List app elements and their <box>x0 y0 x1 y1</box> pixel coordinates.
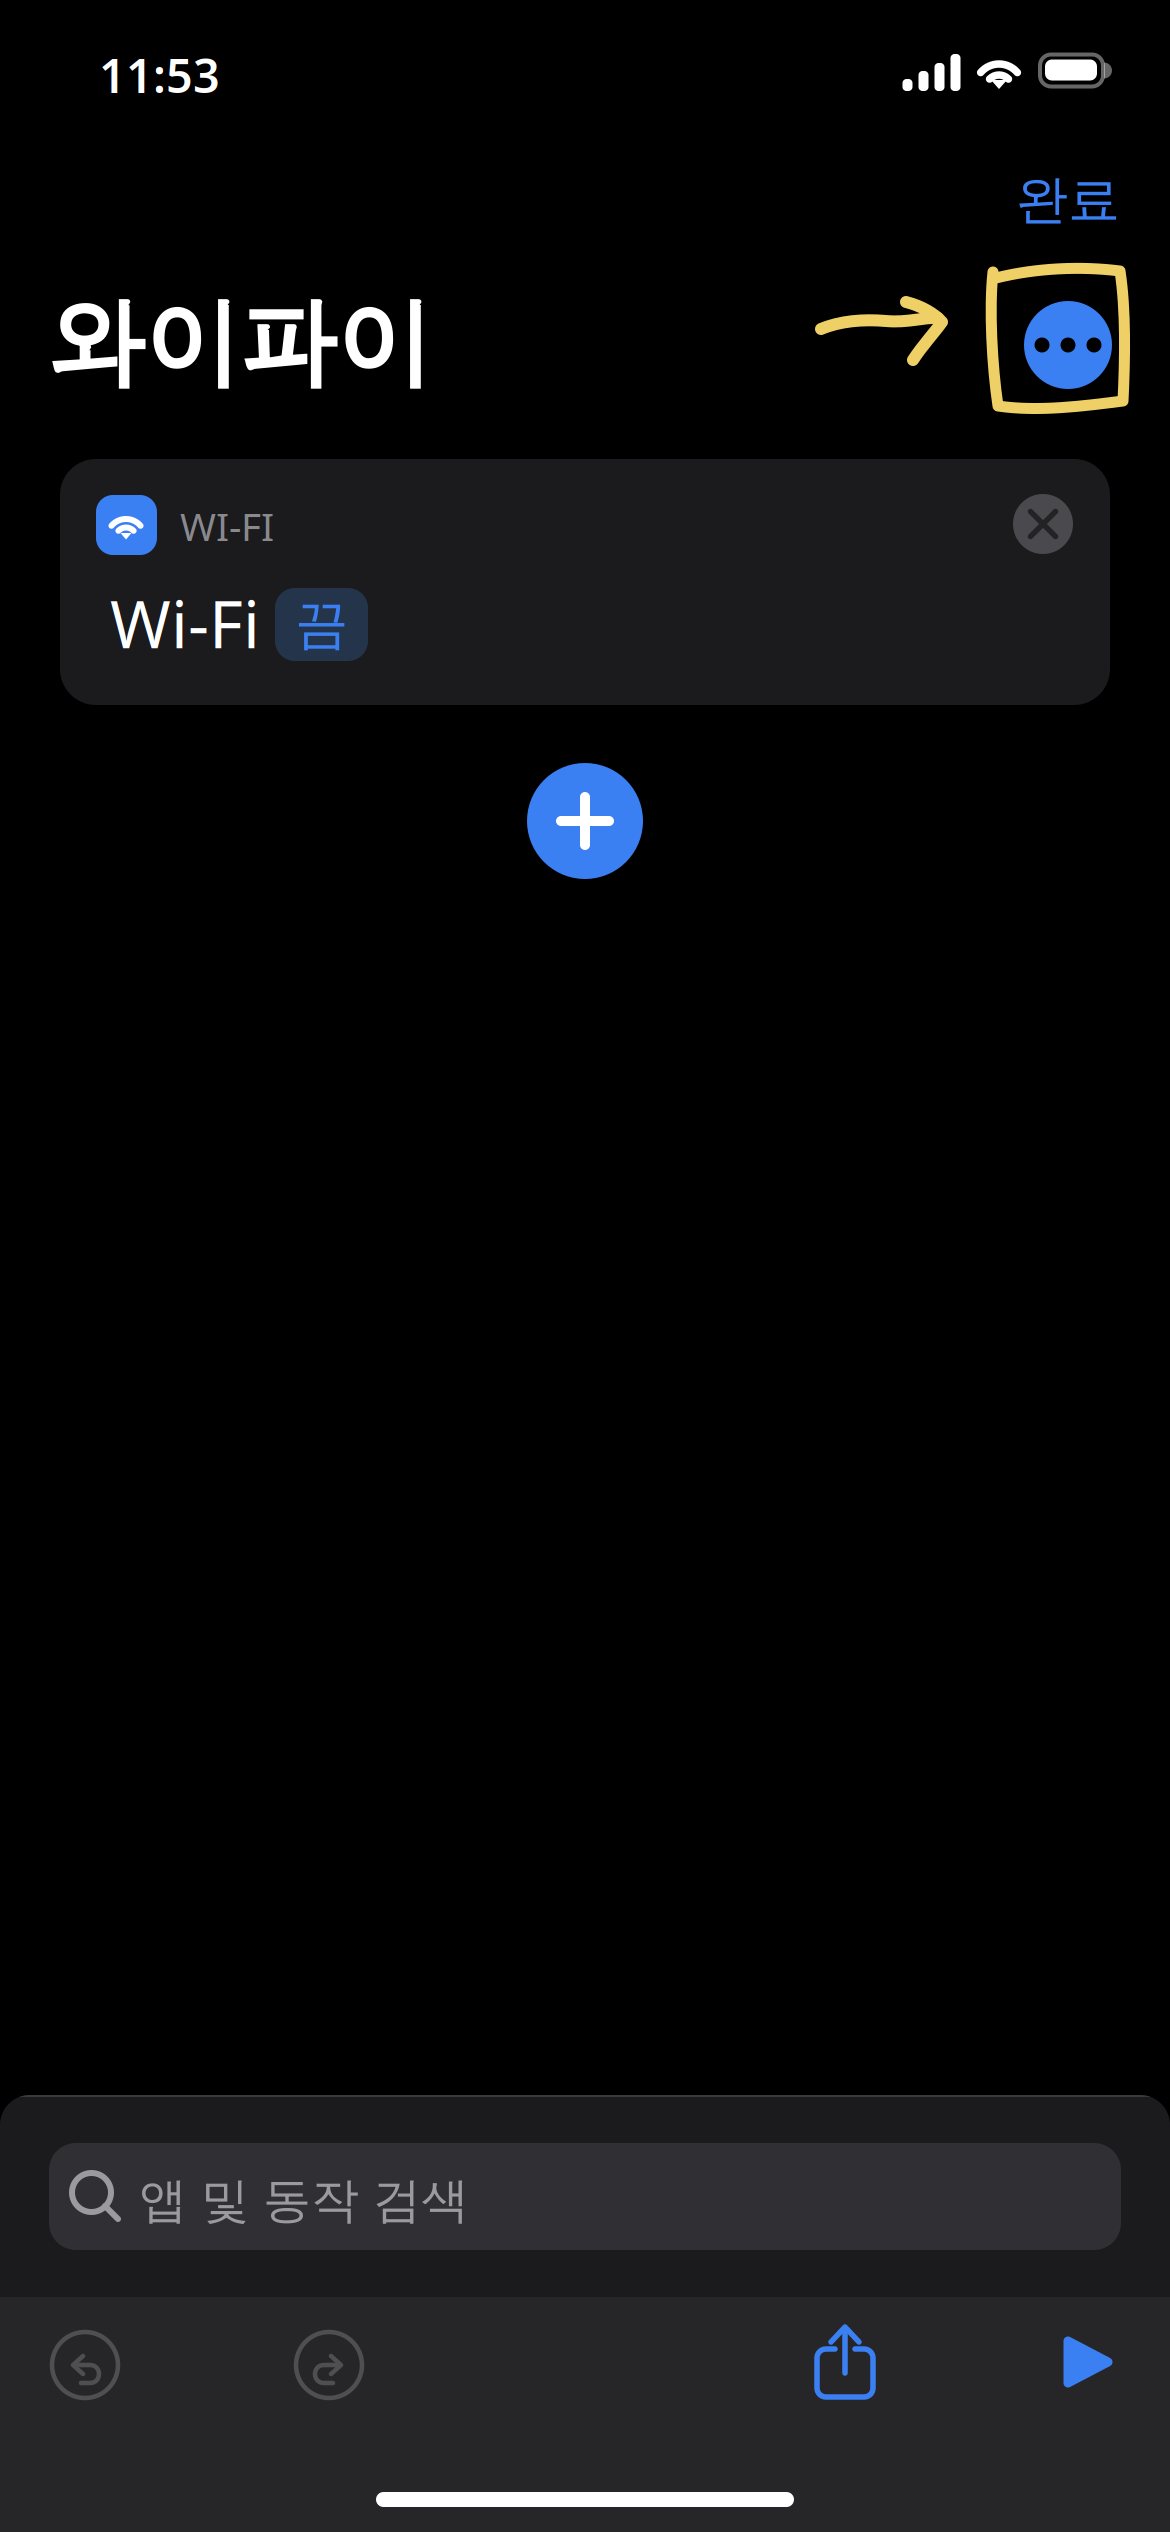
staticText: 끔 <box>295 592 348 657</box>
staticText: Wi-Fi <box>110 580 260 666</box>
button[interactable]: 완료 <box>900 164 1120 236</box>
button[interactable]: Run shortcut <box>1063 2334 1113 2390</box>
button[interactable]: WI-FI <box>60 459 1110 705</box>
staticText: 와이파이 <box>48 284 432 402</box>
staticText: WI-FI <box>180 500 274 552</box>
staticText: 완료 <box>1016 168 1120 232</box>
button[interactable]: Undo <box>52 2332 118 2398</box>
staticText: 11:53 <box>99 44 220 92</box>
button[interactable]: Share <box>814 2322 876 2400</box>
button[interactable]: More options <box>1024 301 1112 389</box>
button[interactable]: 앱 및 동작 검색 <box>49 2143 1121 2250</box>
staticText: 앱 및 동작 검색 <box>139 2171 469 2230</box>
button[interactable]: Add action <box>527 763 643 879</box>
button[interactable]: Delete action <box>1013 494 1073 554</box>
button[interactable]: Redo <box>296 2332 362 2398</box>
